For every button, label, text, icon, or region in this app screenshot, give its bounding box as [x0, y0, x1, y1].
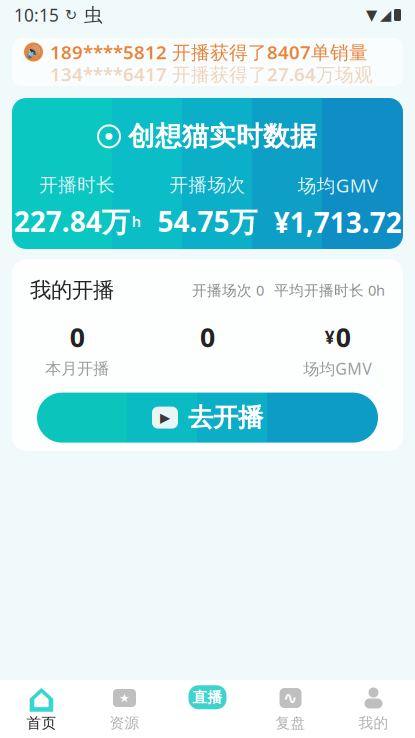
- staticText: 去开播: [188, 402, 263, 433]
- staticText: ¥1,713.72: [274, 203, 402, 241]
- staticText: 虫: [84, 3, 103, 26]
- staticText: 189****5812 开播获得了8407单销量: [50, 40, 368, 64]
- staticText: 创想猫实时数据: [128, 120, 317, 153]
- staticText: 场均GMV: [298, 173, 378, 198]
- staticText: 开播时长: [39, 174, 115, 197]
- staticText: 资源: [109, 714, 139, 732]
- button[interactable]: 资源: [83, 680, 166, 738]
- staticText: 0: [200, 319, 215, 355]
- staticText: ▶: [160, 410, 170, 425]
- button[interactable]: 🔊: [12, 38, 403, 86]
- staticText: 10:15: [14, 3, 59, 26]
- staticText: 首页: [26, 714, 56, 732]
- staticText: 直播: [192, 688, 222, 706]
- staticText: 0: [336, 319, 351, 355]
- staticText: ¥: [325, 325, 335, 348]
- staticText: 54.75万: [157, 203, 257, 240]
- staticText: 场均GMV: [303, 358, 372, 379]
- staticText: 平均开播时长 0h: [274, 280, 385, 300]
- staticText: 🔊: [26, 45, 41, 59]
- staticText: ◢: [380, 7, 391, 23]
- staticText: 我的开播: [30, 277, 114, 303]
- button[interactable]: 直播: [166, 680, 249, 738]
- button[interactable]: 我的: [332, 680, 415, 738]
- staticText: 开播场次 0: [192, 280, 264, 300]
- staticText: ↻: [65, 7, 77, 23]
- staticText: ⌂: [27, 675, 56, 721]
- button[interactable]: ▶: [12, 393, 403, 443]
- staticText: 复盘: [275, 714, 305, 732]
- staticText: 134****6417 开播获得了27.64万场观: [50, 62, 373, 86]
- staticText: ★: [119, 691, 130, 705]
- staticText: 本月开播: [45, 359, 109, 378]
- staticText: 0: [70, 319, 85, 355]
- staticText: h: [132, 211, 141, 231]
- staticText: 我的: [358, 714, 388, 732]
- staticText: 227.84万: [14, 203, 130, 240]
- button[interactable]: 首页: [0, 680, 83, 738]
- button[interactable]: 复盘: [249, 680, 332, 738]
- staticText: ▼: [366, 7, 377, 23]
- staticText: 开播场次: [169, 174, 245, 197]
- staticText: ∿: [283, 688, 298, 708]
